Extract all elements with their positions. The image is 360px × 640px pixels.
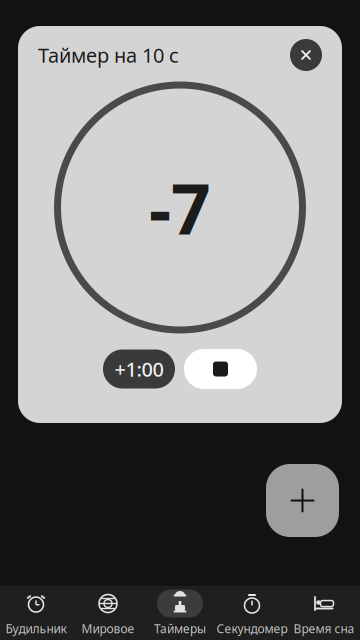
button[interactable]: Время сна <box>288 586 360 640</box>
button[interactable]: Мировое <box>72 586 144 640</box>
button[interactable]: Секундомер <box>216 586 288 640</box>
staticText: Таймеры <box>154 620 206 636</box>
button[interactable]: Будильник <box>0 586 72 640</box>
staticText: Время сна <box>293 620 354 636</box>
staticText: Секундомер <box>216 620 287 636</box>
button[interactable]: +1:00 <box>103 349 175 388</box>
button[interactable]: Добавить таймер <box>266 464 339 537</box>
button[interactable]: Закрыть <box>290 39 322 71</box>
button[interactable]: Таймеры <box>144 586 216 640</box>
staticText: Таймер на 10 с <box>38 42 179 68</box>
staticText: Мировое <box>81 620 134 636</box>
staticText: -7 <box>149 161 211 254</box>
button[interactable]: Стоп <box>184 349 257 389</box>
staticText: Будильник <box>5 620 66 636</box>
staticText: +1:00 <box>114 356 163 382</box>
